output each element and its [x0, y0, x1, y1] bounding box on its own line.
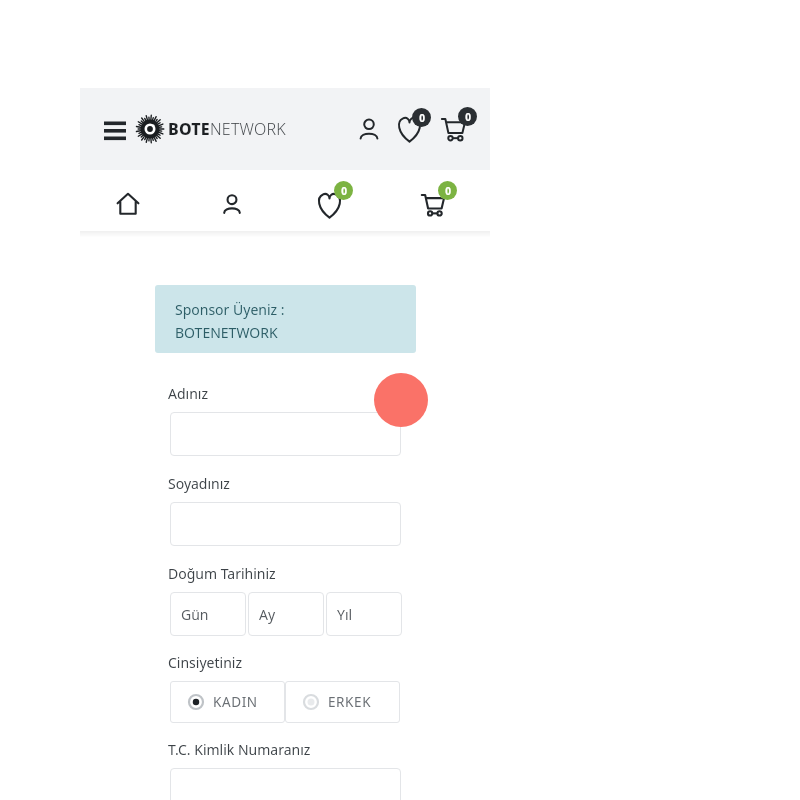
staticText: Sponsor Üyeniz :: [175, 300, 285, 319]
button[interactable]: Text field: [170, 502, 401, 546]
staticText: 0: [465, 110, 471, 124]
button[interactable]: Cart, 0 items: [437, 107, 485, 155]
button[interactable]: Yıl: [326, 592, 402, 636]
staticText: Soyadınız: [168, 474, 230, 493]
staticText: Ay: [259, 605, 276, 624]
button[interactable]: Profile: [210, 182, 254, 226]
staticText: BOTE: [168, 118, 210, 140]
button[interactable]: Action: [374, 373, 428, 427]
staticText: ERKEK: [328, 693, 372, 711]
button[interactable]: BOTE: [135, 110, 286, 148]
button[interactable]: ERKEK: [285, 681, 400, 723]
button[interactable]: Menu: [94, 108, 136, 150]
staticText: Adınız: [168, 384, 209, 403]
staticText: Cinsiyetiniz: [168, 653, 242, 672]
button[interactable]: Cart, 0 items: [416, 178, 466, 228]
staticText: Doğum Tarihiniz: [168, 564, 276, 583]
staticText: 0: [419, 111, 425, 125]
button[interactable]: Text field: [170, 768, 401, 800]
staticText: T.C. Kimlik Numaranız: [168, 740, 311, 759]
button[interactable]: Account: [347, 107, 391, 151]
staticText: KADIN: [213, 693, 258, 711]
staticText: 0: [341, 184, 347, 198]
staticText: Yıl: [337, 605, 353, 624]
button[interactable]: Favorites, 0 items: [392, 107, 440, 155]
button[interactable]: Gün: [170, 592, 246, 636]
button[interactable]: Ay: [248, 592, 324, 636]
staticText: Gün: [181, 605, 209, 624]
button[interactable]: KADIN: [170, 681, 285, 723]
staticText: NETWORK: [210, 118, 286, 140]
button[interactable]: Home: [106, 182, 150, 226]
button[interactable]: Text field: [170, 412, 401, 456]
staticText: BOTENETWORK: [175, 323, 278, 342]
staticText: 0: [445, 184, 451, 198]
button[interactable]: Favorites, 0 items: [312, 178, 362, 228]
